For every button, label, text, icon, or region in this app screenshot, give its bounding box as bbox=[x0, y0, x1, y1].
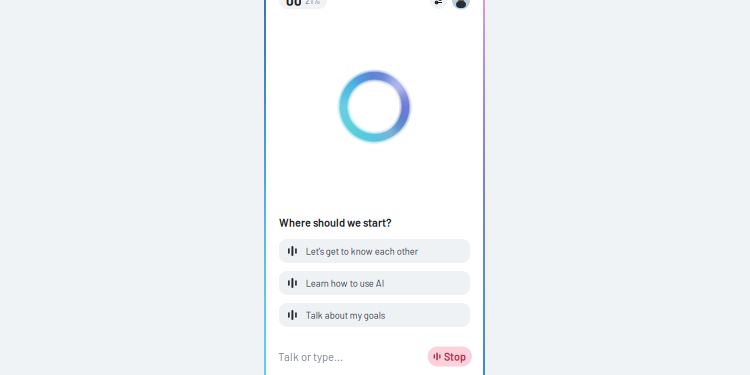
staticText: Learn how to use AI bbox=[306, 277, 384, 289]
staticText: Stop bbox=[444, 350, 466, 363]
staticText: Talk about my goals bbox=[306, 309, 385, 321]
button[interactable]: 00 bbox=[279, 0, 327, 9]
button[interactable]: Let's get to know each other bbox=[279, 239, 470, 263]
staticText: Where should we start? bbox=[279, 216, 391, 229]
button[interactable]: Talk about my goals bbox=[279, 303, 470, 327]
button[interactable]: Learn how to use AI bbox=[279, 271, 470, 295]
button[interactable]: Talk or type... bbox=[266, 338, 343, 375]
staticText: Let's get to know each other bbox=[306, 245, 418, 257]
staticText: 00 bbox=[286, 0, 302, 8]
button[interactable]: Profile bbox=[452, 0, 470, 9]
button[interactable]: Filters bbox=[430, 0, 447, 9]
staticText: 21% bbox=[305, 0, 320, 6]
button[interactable]: Stop bbox=[428, 346, 472, 366]
staticText: Talk or type... bbox=[278, 350, 343, 363]
